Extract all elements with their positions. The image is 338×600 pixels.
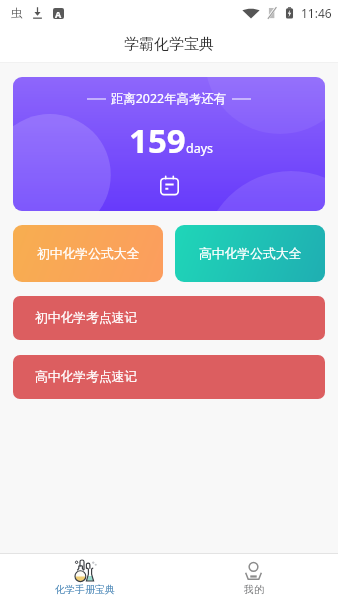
button[interactable]: 初中化学公式大全 [13, 225, 163, 282]
button[interactable]: 化学手册宝典 [0, 554, 169, 600]
staticText: 159 [129, 118, 186, 163]
staticText: 初中化学公式大全 [37, 246, 140, 262]
staticText: 虫 [11, 6, 23, 20]
staticText: 11:46 [301, 5, 332, 21]
staticText: 化学手册宝典 [55, 583, 115, 596]
staticText: days [186, 140, 214, 157]
staticText: 初中化学考点速记 [35, 310, 138, 326]
button[interactable]: 我的 [169, 554, 338, 600]
button[interactable]: 高中化学公式大全 [175, 225, 325, 282]
button[interactable]: Countdown settings [159, 175, 179, 195]
staticText: A [55, 8, 62, 19]
staticText: 高中化学公式大全 [199, 246, 302, 262]
button[interactable]: 初中化学考点速记 [13, 296, 325, 340]
staticText: 学霸化学宝典 [124, 35, 214, 54]
staticText: 距离2022年高考还有 [111, 90, 227, 107]
button[interactable]: 高中化学考点速记 [13, 355, 325, 399]
staticText: 高中化学考点速记 [35, 369, 138, 385]
button[interactable]: 距离2022年高考还有 [13, 77, 325, 211]
staticText: 我的 [244, 583, 264, 596]
